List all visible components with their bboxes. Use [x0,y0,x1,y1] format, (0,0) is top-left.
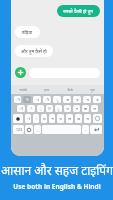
button[interactable]: हाय [35,85,58,94]
staticText: 123 [16,127,22,132]
staticText: क [84,106,87,111]
button[interactable]: द [93,96,101,103]
button[interactable]: स [75,114,82,123]
staticText: त [93,106,96,111]
button[interactable]: Key [25,125,33,134]
staticText: ी [45,97,49,102]
staticText: र [76,106,78,111]
staticText: ै [26,97,29,102]
staticText: नमस्ते [19,87,27,92]
button[interactable]: ौ [14,96,21,103]
staticText: ौ [16,97,20,102]
staticText: ि [48,106,52,111]
button[interactable]: े [27,105,35,112]
staticText: और तुम कैसे हो [21,48,47,54]
button[interactable]: Add attachment [15,67,26,78]
button[interactable]: Key [93,114,102,123]
staticText: . [85,127,87,132]
button[interactable] [42,125,81,134]
staticText: ग [86,97,89,102]
button[interactable]: ॉ [25,114,31,123]
button[interactable]: त [91,105,98,112]
staticText: ह [76,97,79,102]
button[interactable]: ग [83,96,91,103]
button[interactable]: ी [43,96,51,103]
staticText: , [37,127,39,132]
button[interactable]: और तुम कैसे हो [15,45,53,57]
button[interactable]: Key [13,114,23,123]
button[interactable]: म [41,114,47,123]
staticText: ं [35,116,38,121]
button[interactable]: , [34,125,41,134]
button[interactable]: Key [90,125,102,134]
staticText: बढ़िया [22,29,33,35]
button[interactable]: ि [46,105,53,112]
button[interactable]: ा [33,96,41,103]
button[interactable]: प [64,105,71,112]
staticText: ो [19,106,23,111]
button[interactable]: नमस्ते कैसी हो तुम [57,5,100,17]
staticText: म [43,116,46,121]
button[interactable]: ह [73,96,81,103]
button[interactable]: ं [33,114,39,123]
button[interactable]: व [57,114,64,123]
button[interactable]: ो [17,105,25,112]
button[interactable]: बढ़िया [15,26,40,38]
staticText: ब [66,97,69,102]
button[interactable]: ् [37,105,44,112]
staticText: ा [35,97,39,102]
button[interactable]: ब [63,96,71,103]
button[interactable]: य [84,114,91,123]
staticText: ू [56,97,59,102]
staticText: न [51,116,54,121]
staticText: ् [39,106,42,111]
staticText: द [96,97,99,102]
staticText: कैसे [67,87,73,92]
staticText: ु [57,106,60,111]
button[interactable]: 123 [13,125,24,134]
button[interactable]: क [82,105,89,112]
button[interactable]: तुम [81,85,104,94]
staticText: हाय [44,87,49,92]
staticText: तुम [90,87,95,92]
staticText: ल [68,116,71,121]
staticText: े [30,106,33,111]
staticText: स [77,116,80,121]
button[interactable]: न [49,114,55,123]
button[interactable]: ै [23,96,31,103]
staticText: व [59,116,62,121]
staticText: ॉ [26,116,30,121]
button[interactable]: ु [55,105,62,112]
button[interactable]: र [73,105,80,112]
staticText: Use both in English & Hindi [13,182,101,191]
button[interactable]: . [82,125,89,134]
button[interactable]: नमस्ते [11,85,35,94]
staticText: प [66,106,69,111]
staticText: आसान और सहज टाइपिंग [1,162,113,178]
staticText: य [86,116,89,121]
button[interactable]: ल [66,114,73,123]
button[interactable]: ू [53,96,61,103]
staticText: नमस्ते कैसी हो तुम [63,8,94,14]
button[interactable]: कैसे [58,85,81,94]
